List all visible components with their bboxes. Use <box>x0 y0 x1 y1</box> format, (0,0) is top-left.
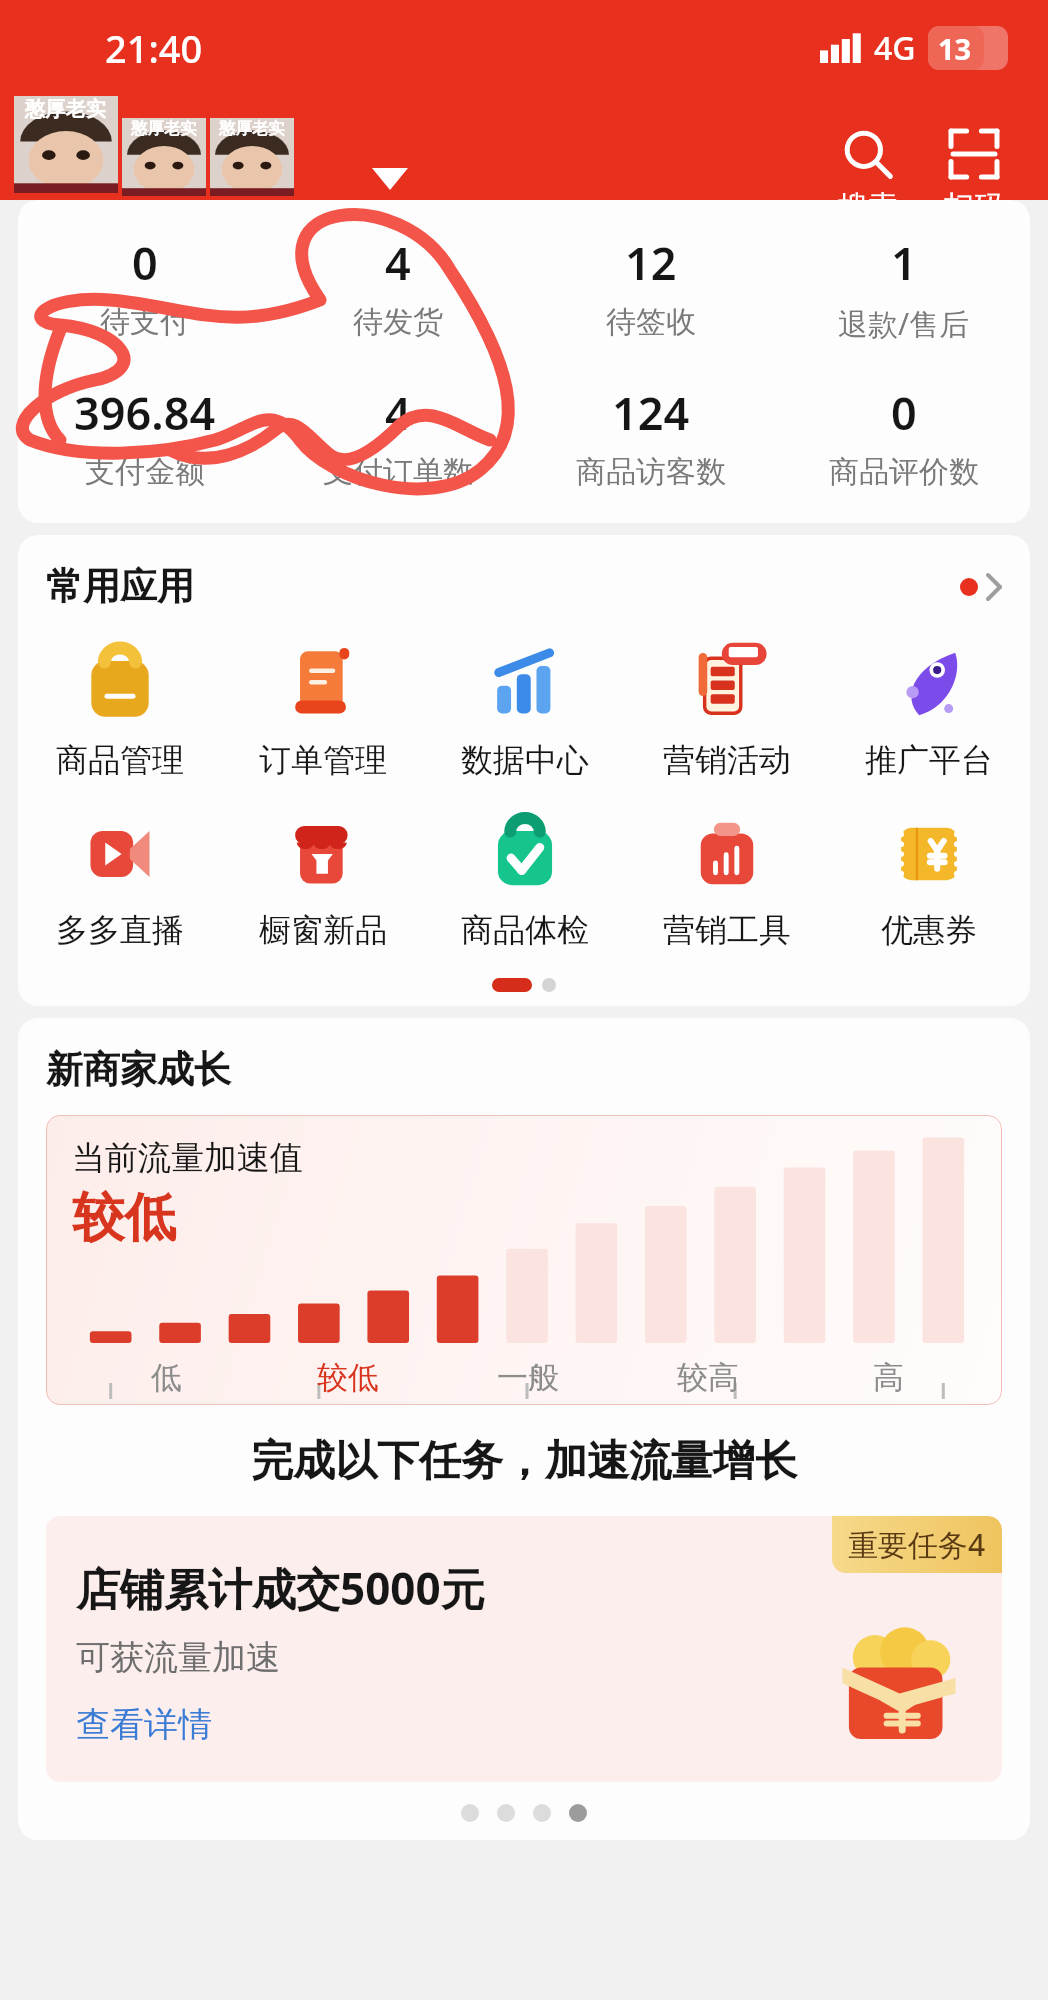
staticText: 低 <box>151 1358 182 1397</box>
button[interactable]: 数据中心 <box>424 626 626 790</box>
button[interactable]: Shop avatar <box>210 118 294 196</box>
button[interactable]: 当前流量加速值 <box>46 1115 1002 1405</box>
staticText: 可获流量加速 <box>76 1636 280 1679</box>
button[interactable]: 124 <box>524 378 777 495</box>
button[interactable]: More apps <box>960 573 1002 601</box>
staticText: 憨厚老实 <box>131 118 197 139</box>
staticText: 124 <box>612 382 690 443</box>
button[interactable]: 396.84 <box>18 378 271 495</box>
button[interactable]: Shop avatar <box>14 96 118 193</box>
staticText: 较高 <box>677 1358 739 1397</box>
staticText: 待发货 <box>353 303 443 341</box>
staticText: 重要任务4 <box>848 1524 986 1565</box>
staticText: 营销工具 <box>663 910 791 950</box>
staticText: 数据中心 <box>461 740 589 780</box>
staticText: 12 <box>625 232 677 293</box>
button[interactable]: 4 <box>271 378 524 495</box>
staticText: 扫码 <box>944 188 1004 200</box>
staticText: 店铺累计成交5000元 <box>76 1558 485 1618</box>
button[interactable]: 优惠券 <box>828 796 1030 960</box>
staticText: 憨厚老实 <box>25 96 107 122</box>
button[interactable]: 0 <box>18 228 271 345</box>
staticText: 憨厚老实 <box>219 118 285 139</box>
staticText: 当前流量加速值 <box>72 1137 303 1179</box>
button[interactable]: 搜索 <box>838 128 898 200</box>
staticText: 0 <box>891 382 917 443</box>
button[interactable]: 营销活动 <box>626 626 828 790</box>
button[interactable]: 多多直播 <box>18 796 221 960</box>
button[interactable]: 12 <box>524 228 777 345</box>
staticText: 商品管理 <box>56 740 184 780</box>
staticText: 订单管理 <box>259 740 387 780</box>
staticText: 4G <box>874 26 916 70</box>
staticText: 4 <box>385 382 411 443</box>
staticText: 退款/售后 <box>838 303 970 344</box>
staticText: 4 <box>385 232 411 293</box>
staticText: 1 <box>891 232 917 293</box>
staticText: 待支付 <box>100 303 190 341</box>
staticText: 13 <box>938 29 972 68</box>
staticText: 支付金额 <box>85 453 205 491</box>
staticText: 较低 <box>72 1185 176 1251</box>
button[interactable]: 橱窗新品 <box>221 796 424 960</box>
staticText: 待签收 <box>606 303 696 341</box>
button[interactable]: 店铺累计成交5000元 <box>46 1516 1002 1782</box>
staticText: 商品评价数 <box>829 453 979 491</box>
button[interactable]: 4 <box>271 228 524 345</box>
staticText: 商品体检 <box>461 910 589 950</box>
button[interactable]: 商品体检 <box>424 796 626 960</box>
staticText: 一般 <box>497 1358 559 1397</box>
staticText: 营销活动 <box>663 740 791 780</box>
staticText: 优惠券 <box>881 910 977 950</box>
button[interactable]: 查看详情 <box>76 1703 212 1746</box>
button[interactable]: Shop avatar <box>122 118 206 196</box>
staticText: 多多直播 <box>56 910 184 950</box>
staticText: 搜索 <box>838 188 898 200</box>
staticText: 21:40 <box>105 22 203 74</box>
staticText: 橱窗新品 <box>259 910 387 950</box>
button[interactable]: Expand shop list <box>372 168 408 190</box>
button[interactable]: 1 <box>777 228 1030 348</box>
button[interactable]: 订单管理 <box>221 626 424 790</box>
staticText: 商品访客数 <box>576 453 726 491</box>
staticText: 常用应用 <box>46 563 194 610</box>
button[interactable]: 推广平台 <box>828 626 1030 790</box>
button[interactable]: 0 <box>777 378 1030 495</box>
staticText: 高 <box>873 1358 904 1397</box>
staticText: 较低 <box>317 1358 379 1397</box>
staticText: 新商家成长 <box>46 1046 231 1093</box>
staticText: 完成以下任务，加速流量增长 <box>251 1435 797 1488</box>
staticText: 支付订单数 <box>323 453 473 491</box>
staticText: 0 <box>132 232 158 293</box>
staticText: 396.84 <box>74 382 216 443</box>
button[interactable]: 商品管理 <box>18 626 221 790</box>
staticText: 推广平台 <box>865 740 993 780</box>
button[interactable]: 营销工具 <box>626 796 828 960</box>
button[interactable]: 扫码 <box>944 128 1004 200</box>
